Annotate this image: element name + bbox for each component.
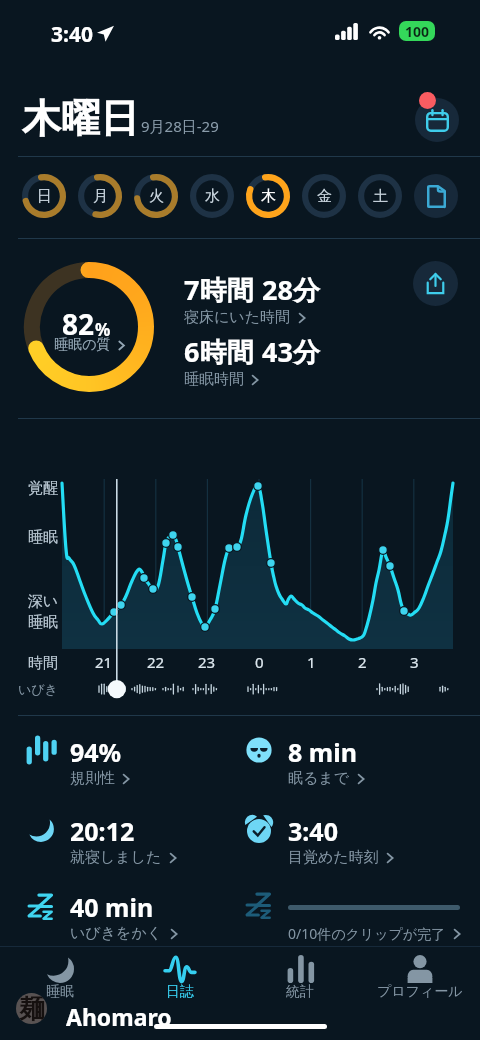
- button[interactable]: [370, 952, 470, 1006]
- button[interactable]: 火: [134, 174, 178, 218]
- button[interactable]: [10, 952, 110, 1006]
- staticText: 水: [205, 187, 220, 206]
- staticText: いびきをかく: [70, 924, 163, 943]
- staticText: 40 min: [70, 890, 154, 924]
- staticText: 木曜日: [22, 94, 139, 143]
- staticText: プロフィール: [377, 983, 463, 1001]
- staticText: 規則性: [70, 769, 115, 788]
- staticText: 94%: [70, 735, 122, 769]
- staticText: 7時間: [184, 271, 254, 308]
- staticText: 麺: [19, 993, 45, 1024]
- button[interactable]: [236, 799, 446, 861]
- button[interactable]: [18, 799, 228, 861]
- staticText: 睡眠時間: [184, 370, 244, 389]
- button[interactable]: [250, 952, 350, 1006]
- button[interactable]: [236, 720, 446, 782]
- staticText: 100: [405, 22, 430, 41]
- staticText: 眠るまで: [288, 769, 350, 788]
- staticText: %: [95, 318, 111, 341]
- button[interactable]: 土: [358, 174, 402, 218]
- staticText: 20:12: [70, 814, 135, 848]
- staticText: 寝床にいた時間: [184, 308, 291, 327]
- button[interactable]: 7時間: [184, 271, 320, 327]
- staticText: 22: [147, 652, 165, 672]
- button[interactable]: Notes: [414, 174, 458, 218]
- button[interactable]: Share: [413, 261, 458, 306]
- staticText: いびき: [18, 681, 58, 697]
- staticText: 9月28日-29: [141, 116, 219, 136]
- staticText: 就寝しました: [70, 848, 162, 867]
- staticText: 日: [37, 187, 52, 206]
- staticText: 睡眠: [28, 528, 58, 547]
- button[interactable]: [130, 952, 230, 1006]
- staticText: 82: [62, 305, 95, 343]
- staticText: 1: [307, 652, 316, 672]
- staticText: 金: [317, 187, 332, 206]
- staticText: 睡眠: [46, 983, 74, 1001]
- staticText: 統計: [286, 983, 314, 1001]
- button[interactable]: 月: [78, 174, 122, 218]
- button[interactable]: 日: [22, 174, 66, 218]
- staticText: 3:40: [51, 20, 93, 49]
- staticText: Ahomaro: [66, 1001, 172, 1032]
- staticText: 時間: [28, 654, 58, 673]
- staticText: 8 min: [288, 735, 357, 769]
- button[interactable]: [18, 720, 228, 782]
- button[interactable]: [18, 875, 228, 937]
- staticText: 0/10件のクリップが完了: [288, 924, 446, 943]
- staticText: 土: [373, 187, 388, 206]
- staticText: 3:40: [288, 814, 338, 848]
- staticText: 月: [93, 187, 108, 206]
- staticText: 28分: [262, 271, 320, 308]
- staticText: 23: [198, 652, 216, 672]
- staticText: 3: [410, 652, 419, 672]
- staticText: 睡眠の質: [54, 336, 111, 354]
- button[interactable]: Calendar: [415, 98, 459, 142]
- staticText: 43分: [262, 333, 320, 370]
- button[interactable]: 水: [190, 174, 234, 218]
- button[interactable]: 金: [302, 174, 346, 218]
- staticText: 日誌: [166, 983, 194, 1001]
- staticText: 深い 睡眠: [27, 592, 58, 631]
- staticText: 0: [255, 652, 264, 672]
- button[interactable]: [240, 877, 470, 937]
- staticText: 目覚めた時刻: [288, 848, 379, 867]
- staticText: 火: [149, 187, 164, 206]
- button[interactable]: [24, 262, 154, 392]
- button[interactable]: 木: [246, 174, 290, 218]
- staticText: 覚醒: [28, 479, 58, 498]
- staticText: 21: [95, 652, 113, 672]
- staticText: 木: [261, 187, 276, 206]
- button[interactable]: 6時間: [184, 333, 320, 389]
- staticText: 6時間: [184, 333, 254, 370]
- staticText: 2: [358, 652, 367, 672]
